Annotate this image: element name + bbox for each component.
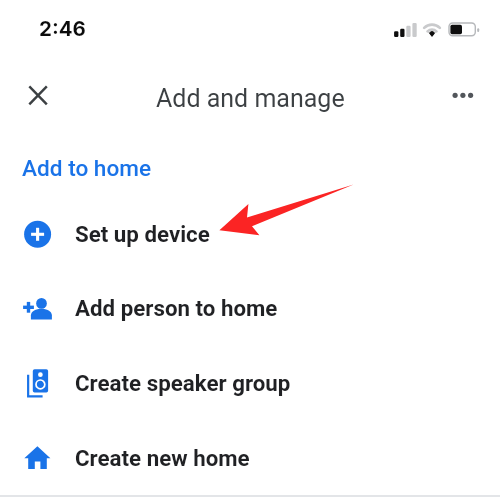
- staticText: Create speaker group: [75, 370, 291, 396]
- button[interactable]: Create speaker group: [0, 346, 500, 420]
- button[interactable]: Set up device: [0, 197, 500, 271]
- staticText: Add to home: [22, 155, 152, 181]
- staticText: 2:46: [39, 16, 86, 41]
- staticText: Create new home: [75, 445, 250, 471]
- button[interactable]: Create new home: [0, 421, 500, 495]
- button[interactable]: More options: [437, 70, 489, 122]
- staticText: Add person to home: [75, 295, 278, 321]
- button[interactable]: Add person to home: [0, 271, 500, 345]
- staticText: Add and manage: [156, 84, 345, 113]
- button[interactable]: Close: [12, 70, 64, 122]
- staticText: Set up device: [75, 221, 210, 247]
